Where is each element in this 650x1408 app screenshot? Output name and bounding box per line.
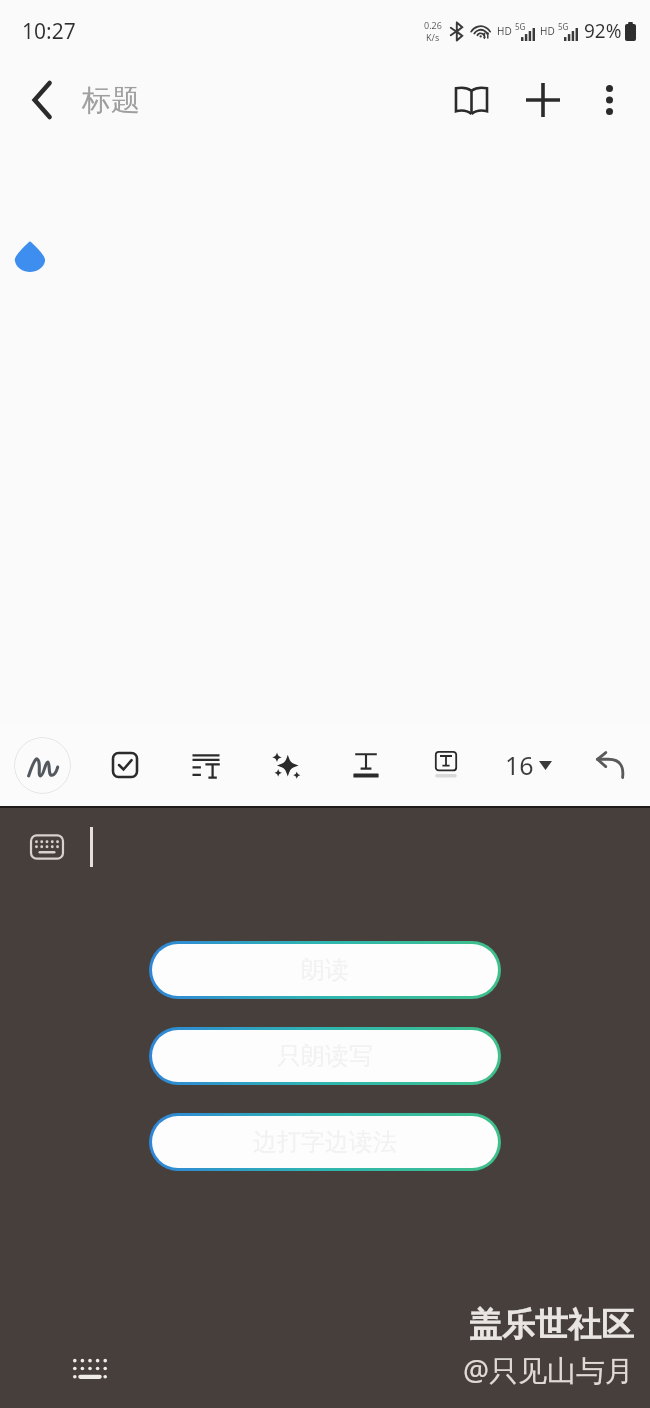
staticText: HD bbox=[540, 24, 555, 38]
button[interactable]: Keyboard bbox=[24, 824, 70, 870]
staticText: 朗读 bbox=[301, 955, 349, 985]
staticText: 92% bbox=[584, 18, 622, 44]
button[interactable]: 16 bbox=[501, 740, 556, 790]
staticText: 5G bbox=[558, 21, 569, 32]
button[interactable]: Paragraph style bbox=[180, 739, 232, 791]
staticText: 标题 bbox=[82, 82, 140, 119]
button[interactable]: Switch keyboard bbox=[68, 1352, 112, 1386]
button[interactable]: More options bbox=[584, 75, 634, 125]
staticText: HD bbox=[497, 24, 512, 38]
button[interactable]: 只朗读写 bbox=[149, 1027, 501, 1085]
button[interactable]: Reading mode bbox=[444, 73, 498, 127]
button[interactable]: Undo bbox=[584, 739, 636, 791]
button[interactable]: Highlight bbox=[420, 739, 472, 791]
button[interactable]: AI assist bbox=[260, 739, 312, 791]
button[interactable]: Back bbox=[16, 73, 70, 127]
staticText: 5G bbox=[515, 21, 526, 32]
staticText: 只朗读写 bbox=[277, 1041, 373, 1071]
button[interactable]: Checklist bbox=[99, 739, 151, 791]
button[interactable]: 朗读 bbox=[149, 941, 501, 999]
staticText: @只见山与月 bbox=[462, 1350, 634, 1390]
button[interactable]: Text color bbox=[340, 739, 392, 791]
staticText: 16 bbox=[505, 748, 534, 782]
staticText: 10:27 bbox=[22, 17, 76, 46]
staticText: 盖乐世社区 bbox=[469, 1304, 634, 1346]
button[interactable]: Handwriting bbox=[14, 737, 71, 794]
button[interactable]: Add bbox=[516, 73, 570, 127]
staticText: K/s bbox=[426, 31, 440, 43]
staticText: 边打字边读法 bbox=[253, 1127, 397, 1157]
staticText: 0.26 bbox=[424, 19, 442, 31]
button[interactable]: 边打字边读法 bbox=[149, 1113, 501, 1171]
